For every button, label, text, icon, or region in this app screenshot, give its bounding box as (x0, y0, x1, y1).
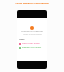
staticText: YOUR ORDER IS CONFIRMED (15, 1, 49, 4)
staticText: order #10482 placed (23, 33, 42, 36)
button[interactable]: Track your order (19, 42, 47, 45)
staticText: Track your order (22, 42, 40, 45)
button[interactable]: Delivery by Friday (19, 46, 47, 49)
staticText: ITEMS (19, 38, 25, 40)
staticText: Delivery by Friday (22, 46, 42, 49)
staticText: Thanks for ordering (21, 30, 43, 33)
